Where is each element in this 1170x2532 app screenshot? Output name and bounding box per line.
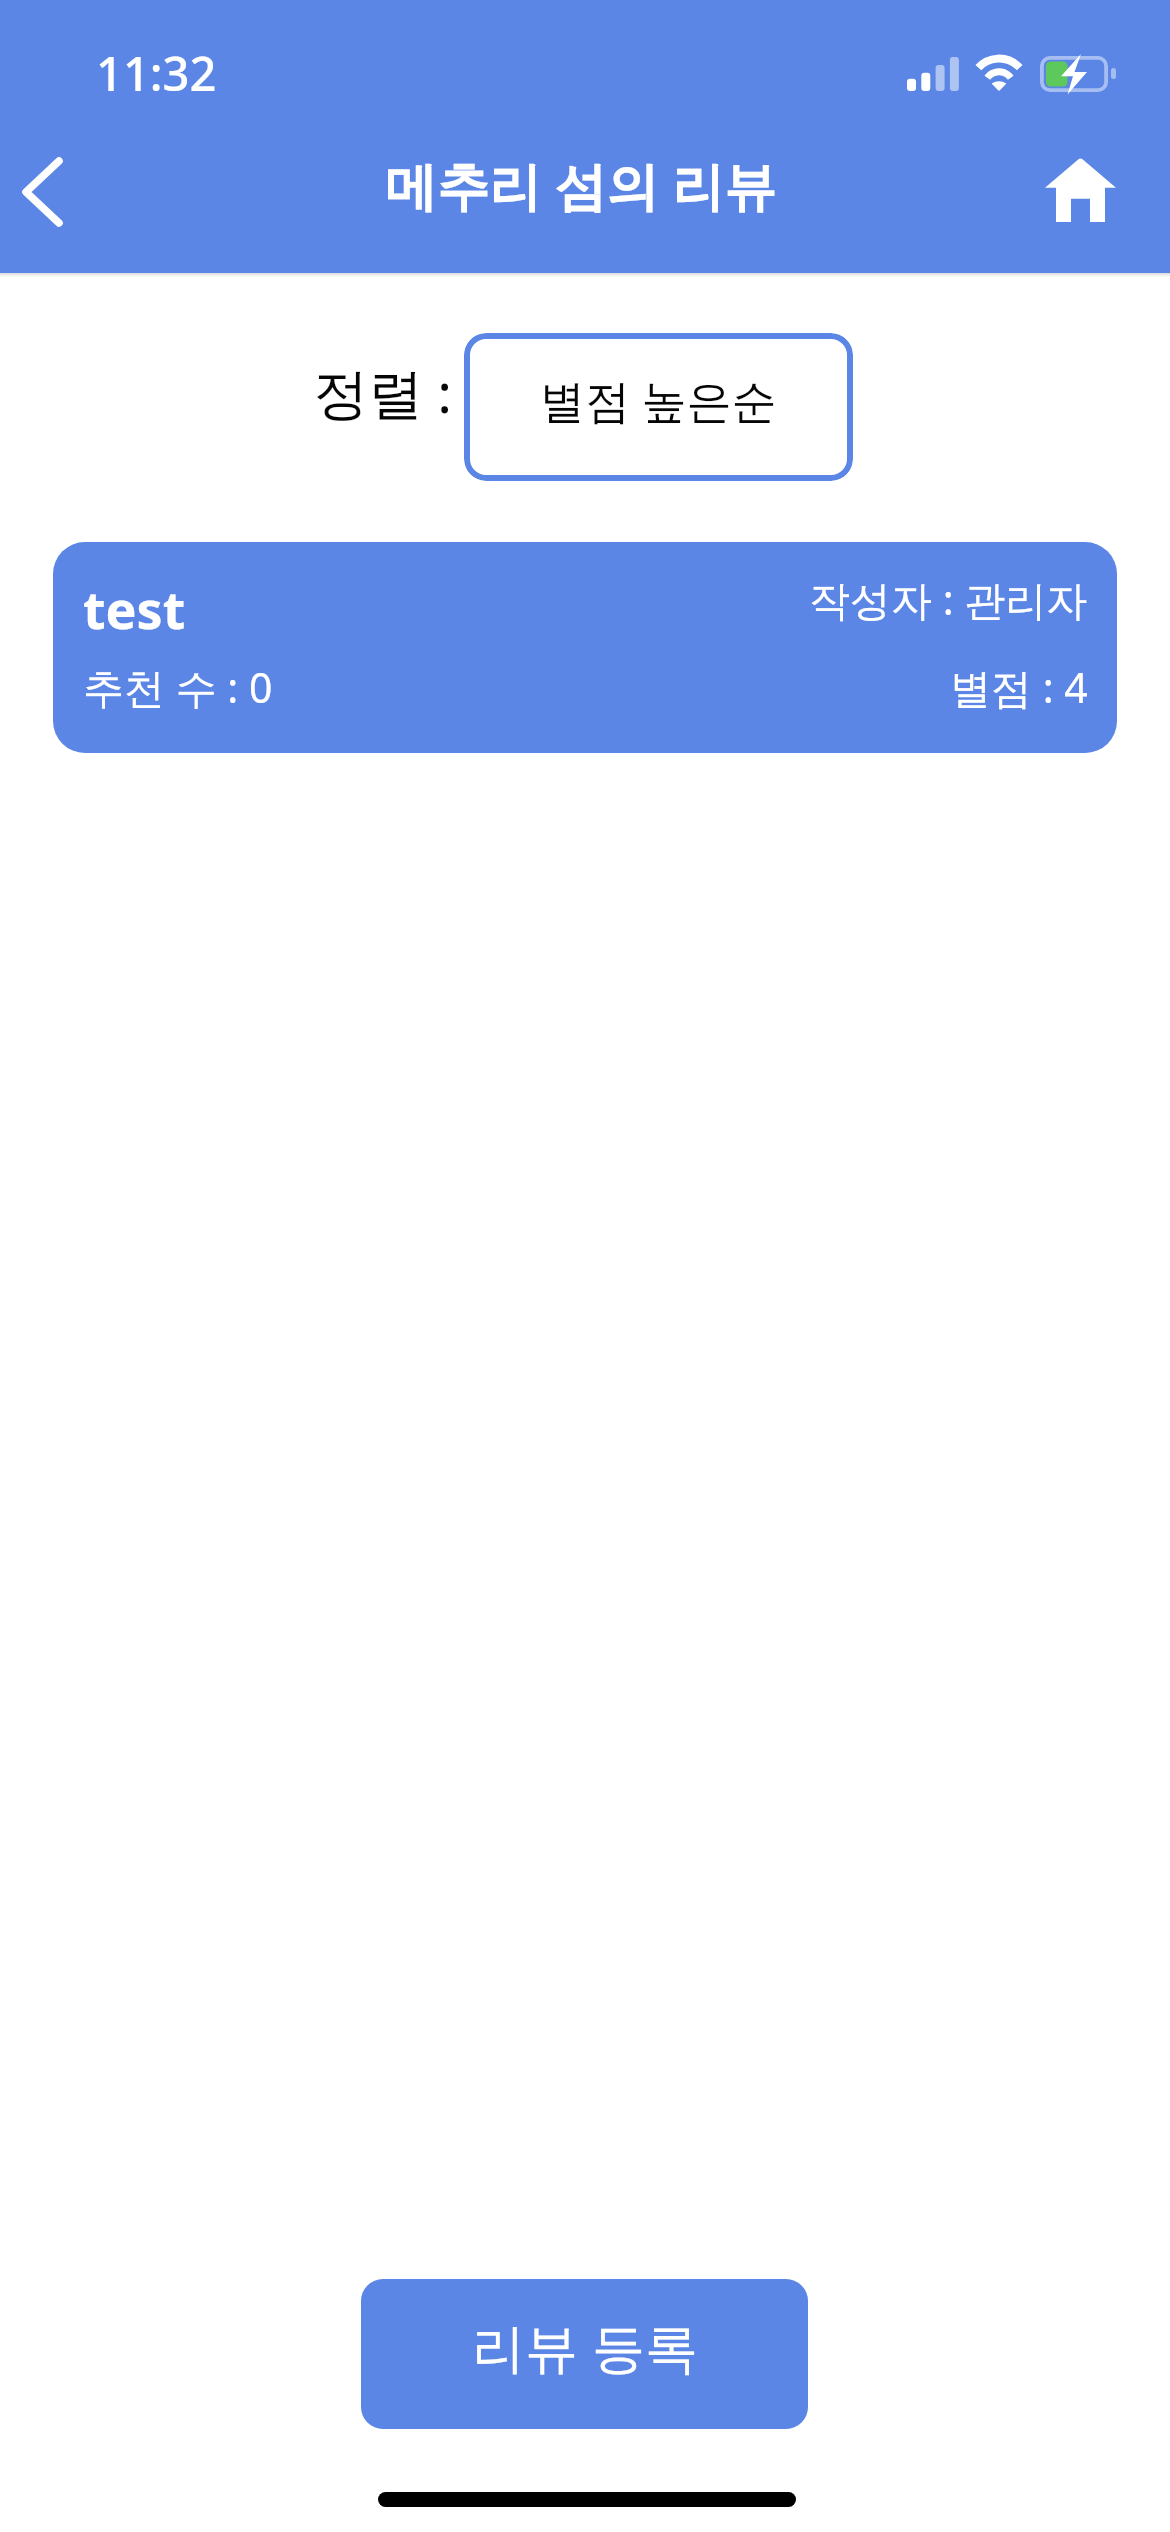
staticText: 작성자 : 관리자 xyxy=(809,571,1088,627)
staticText: 별점 높은순 xyxy=(540,369,777,430)
button[interactable]: Back xyxy=(0,142,94,242)
staticText: test xyxy=(83,573,186,644)
button[interactable]: 별점 높은순 xyxy=(464,333,853,481)
button[interactable]: Home xyxy=(1035,143,1125,237)
button[interactable]: 리뷰 등록 xyxy=(361,2279,808,2429)
staticText: 별점 : 4 xyxy=(950,659,1088,715)
staticText: 메추리 섬의 리뷰 xyxy=(385,149,777,220)
staticText: 추천 수 : 0 xyxy=(83,659,273,715)
staticText: 리뷰 등록 xyxy=(472,2310,698,2382)
staticText: 정렬 : xyxy=(313,354,453,429)
staticText: 11:32 xyxy=(96,41,217,105)
button[interactable]: test xyxy=(53,542,1117,753)
